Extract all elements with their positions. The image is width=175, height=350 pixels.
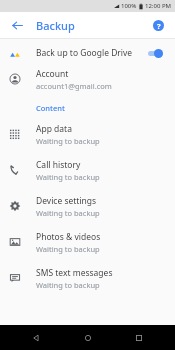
staticText: Content (36, 103, 65, 113)
staticText: 12:00 PM (145, 2, 172, 10)
staticText: Call history (36, 159, 81, 171)
button[interactable]: Help (149, 16, 167, 34)
button[interactable]: Recent apps (124, 325, 154, 350)
button[interactable]: Call history (0, 152, 175, 188)
button[interactable]: Back up to Google Drive toggle (146, 46, 166, 60)
button[interactable]: Back (8, 16, 26, 34)
staticText: Backup (36, 18, 75, 33)
staticText: Account (36, 68, 69, 80)
button[interactable]: Back (21, 325, 51, 350)
staticText: Waiting to backup (36, 244, 100, 254)
staticText: account1@gmail.com (36, 81, 112, 91)
staticText: Device settings (36, 195, 97, 207)
button[interactable]: Back up to Google Drive (0, 42, 175, 64)
staticText: ? (157, 21, 161, 31)
button[interactable]: App data (0, 116, 175, 152)
staticText: Waiting to backup (36, 172, 100, 182)
button[interactable]: Device settings (0, 188, 175, 224)
button[interactable]: SMS text messages (0, 260, 175, 296)
button[interactable]: Account (0, 64, 175, 94)
staticText: SMS text messages (36, 267, 113, 279)
staticText: 100% (121, 2, 137, 10)
staticText: Waiting to backup (36, 280, 100, 290)
staticText: Waiting to backup (36, 208, 100, 218)
staticText: Waiting to backup (36, 136, 100, 146)
staticText: App data (36, 123, 72, 135)
staticText: Photos & videos (36, 231, 101, 243)
staticText: Back up to Google Drive (36, 47, 133, 59)
button[interactable]: Photos & videos (0, 224, 175, 260)
button[interactable]: Home (73, 325, 103, 350)
